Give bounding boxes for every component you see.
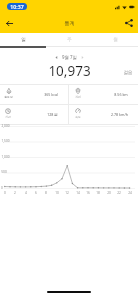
staticText: 500 [1,170,7,174]
staticText: 1,500 [1,139,10,143]
staticText: 월 [113,37,118,43]
staticText: 22 [117,191,121,195]
button[interactable]: Next day [78,53,87,62]
staticText: 18 [96,191,100,195]
button[interactable]: 거리 [69,85,138,104]
staticText: 1,000 [1,155,10,159]
staticText: 20 [107,191,111,195]
staticText: 12 [65,191,69,195]
staticText: 거리 [75,95,81,99]
staticText: 128 분 [47,112,58,117]
staticText: 10:37 [10,3,24,10]
staticText: 4 [25,191,27,195]
button[interactable]: Back [0,14,18,32]
staticText: 8.56 km [114,92,128,97]
staticText: 10,973 [48,62,91,80]
staticText: 활동량 [4,95,13,99]
button[interactable]: 활동량 [0,85,68,104]
staticText: 시간 [5,115,11,119]
staticText: 0 [1,186,3,190]
staticText: 2 [14,191,16,195]
staticText: 속도 [75,115,81,119]
staticText: 14 [76,191,80,195]
staticText: 걸음 [123,70,133,76]
staticText: 2.78 km/h [111,112,128,117]
staticText: 2,000 [1,124,10,128]
staticText: 365 kcal [44,92,58,97]
staticText: 통계 [64,20,75,27]
staticText: 16 [86,191,90,195]
staticText: 일 [21,37,26,43]
button[interactable]: 일 [0,33,46,46]
staticText: 0 [4,191,6,195]
staticText: 10 [55,191,59,195]
button[interactable]: Previous day [52,53,61,62]
staticText: 24 [128,191,132,195]
staticText: 8 [45,191,47,195]
staticText: 9월 7일 [62,54,77,60]
button[interactable]: 시간 [0,105,68,124]
staticText: 6 [35,191,37,195]
button[interactable]: 주 [46,33,92,46]
staticText: 주 [67,37,72,43]
button[interactable]: Share [120,14,138,32]
button[interactable]: 월 [92,33,138,46]
button[interactable]: 속도 [69,105,138,124]
